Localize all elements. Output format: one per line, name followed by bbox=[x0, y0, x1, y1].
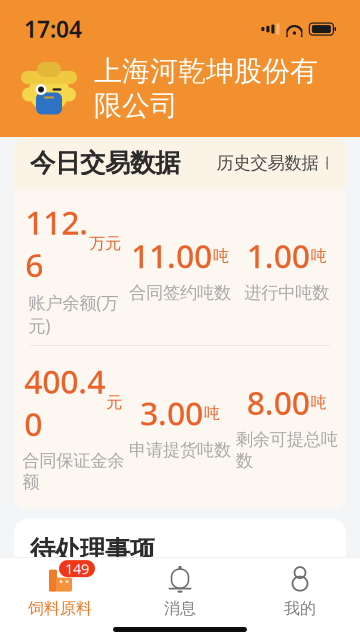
staticText: 申请提货吨数 bbox=[129, 439, 231, 461]
staticText: 今日交易数据 bbox=[30, 147, 180, 178]
button[interactable]: 我的 bbox=[240, 566, 360, 618]
staticText: 1.00 bbox=[247, 235, 310, 277]
staticText: 剩余可提总吨数 bbox=[236, 429, 338, 471]
staticText: 账户余额(万元) bbox=[28, 291, 118, 337]
staticText: 上海河乾坤股份有限公司 bbox=[94, 54, 318, 123]
staticText: 待处理事项 bbox=[30, 535, 155, 566]
staticText: 进行中吨数 bbox=[244, 282, 329, 303]
button[interactable]: 今日交易数据 bbox=[14, 137, 346, 189]
staticText: 元 bbox=[106, 393, 122, 412]
staticText: 112 bbox=[44, 573, 84, 640]
staticText: 吨 bbox=[311, 246, 327, 266]
staticText: 待处理合同 bbox=[120, 561, 139, 640]
staticText: 17:04 bbox=[24, 14, 82, 44]
staticText: 合同签约吨数 bbox=[129, 282, 231, 303]
staticText: 合同保证金余额 bbox=[22, 450, 124, 493]
staticText: 149 bbox=[65, 559, 89, 578]
button[interactable]: 消息 bbox=[120, 566, 240, 618]
staticText: 待处理提货 bbox=[277, 561, 296, 640]
staticText: 吨 bbox=[213, 246, 229, 266]
button[interactable]: 149 bbox=[0, 566, 120, 618]
staticText: 万元 bbox=[89, 234, 121, 253]
staticText: 11.00 bbox=[131, 235, 212, 277]
button[interactable]: 112 bbox=[30, 580, 173, 640]
staticText: 3.00 bbox=[140, 392, 203, 434]
staticText: 400.40 bbox=[24, 360, 105, 445]
staticText: 我的 bbox=[284, 599, 316, 618]
staticText: 饲料原料 bbox=[28, 599, 92, 618]
staticText: 历史交易数据 bbox=[216, 152, 318, 174]
staticText: 吨 bbox=[311, 393, 327, 412]
button[interactable]: 37 bbox=[187, 580, 330, 640]
staticText: 8.00 bbox=[247, 381, 310, 424]
staticText: 消息 bbox=[164, 599, 196, 618]
staticText: 37 bbox=[201, 596, 241, 640]
staticText: 112.6 bbox=[25, 201, 88, 286]
staticText: 吨 bbox=[204, 403, 220, 423]
